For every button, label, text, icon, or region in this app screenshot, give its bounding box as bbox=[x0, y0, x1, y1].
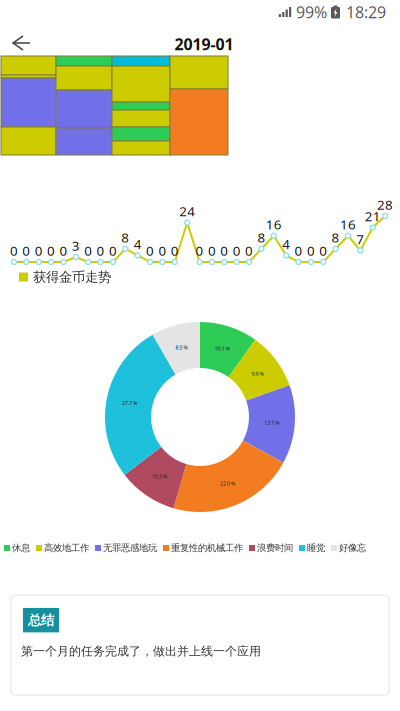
staticText: 重复性的机械工作 bbox=[171, 542, 243, 554]
staticText: 0 bbox=[195, 242, 203, 259]
staticText: 28 bbox=[377, 196, 393, 213]
staticText: 0 bbox=[294, 242, 302, 259]
staticText: 总结 bbox=[28, 612, 54, 628]
staticText: 27.7 % bbox=[122, 399, 137, 406]
staticText: 获得金币走势 bbox=[33, 269, 111, 285]
staticText: 18:29 bbox=[346, 1, 386, 23]
staticText: 4 bbox=[282, 235, 290, 253]
staticText: 好像忘 bbox=[339, 542, 366, 554]
staticText: 3 bbox=[72, 237, 80, 254]
staticText: 21 bbox=[365, 207, 381, 225]
staticText: 0 bbox=[35, 242, 43, 259]
staticText: 24 bbox=[179, 202, 195, 220]
staticText: 睡觉 bbox=[307, 542, 325, 554]
button[interactable]: Back bbox=[0, 26, 40, 60]
staticText: 第一个月的任务完成了，做出并上线一个应用 bbox=[21, 644, 261, 659]
staticText: 0 bbox=[59, 242, 67, 259]
staticText: 0 bbox=[97, 242, 105, 259]
staticText: 休息 bbox=[12, 542, 30, 554]
staticText: 0 bbox=[245, 242, 253, 259]
staticText: 0 bbox=[171, 242, 179, 259]
staticText: 0 bbox=[109, 242, 117, 259]
staticText: 高效地工作 bbox=[44, 542, 89, 554]
staticText: 4 bbox=[134, 235, 142, 253]
staticText: 8 bbox=[257, 228, 265, 246]
staticText: 10.3 % bbox=[152, 473, 167, 480]
staticText: 9.9 % bbox=[251, 370, 263, 377]
staticText: 10.1 % bbox=[214, 345, 229, 352]
staticText: 无罪恶感地玩 bbox=[103, 542, 157, 554]
staticText: 16 bbox=[266, 215, 282, 233]
staticText: 0 bbox=[158, 242, 166, 259]
staticText: 99% bbox=[296, 1, 327, 23]
staticText: 0 bbox=[10, 242, 18, 259]
staticText: 0 bbox=[220, 242, 228, 259]
staticText: 0 bbox=[319, 242, 327, 259]
staticText: 0 bbox=[307, 242, 315, 259]
staticText: 2019-01 bbox=[174, 33, 233, 55]
staticText: 7 bbox=[356, 230, 364, 248]
staticText: 0 bbox=[233, 242, 241, 259]
staticText: 0 bbox=[22, 242, 30, 259]
staticText: 22.0 % bbox=[220, 480, 235, 487]
staticText: 0 bbox=[47, 242, 55, 259]
staticText: 8 bbox=[121, 228, 129, 246]
staticText: 8.5 % bbox=[175, 344, 187, 351]
staticText: 0 bbox=[146, 242, 154, 259]
staticText: 浪费时间 bbox=[257, 542, 293, 554]
staticText: 0 bbox=[208, 242, 216, 259]
staticText: 16 bbox=[340, 215, 356, 233]
staticText: 8 bbox=[332, 228, 340, 246]
staticText: 0 bbox=[84, 242, 92, 259]
staticText: 13.7 % bbox=[264, 419, 279, 426]
